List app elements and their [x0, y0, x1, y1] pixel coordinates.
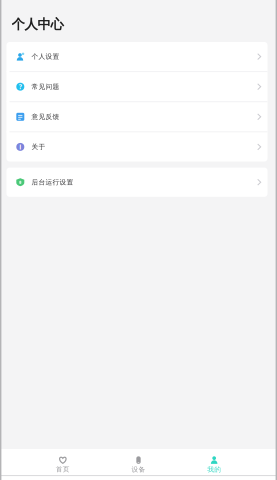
button[interactable]: 我的 [176, 449, 252, 475]
staticText: i [19, 142, 21, 151]
button[interactable]: i [6, 132, 267, 161]
button[interactable]: ? [6, 72, 267, 101]
button[interactable]: 后台运行设置 [6, 168, 267, 197]
staticText: 常见问题 [32, 83, 60, 91]
staticText: 个人中心 [11, 16, 63, 32]
staticText: 后台运行设置 [32, 178, 74, 186]
staticText: 个人设置 [32, 52, 60, 61]
staticText: 我的 [207, 465, 221, 474]
button[interactable]: 设备 [101, 449, 176, 475]
staticText: 关于 [32, 143, 46, 151]
button[interactable]: 首页 [25, 449, 101, 475]
button[interactable]: 个人设置 [6, 42, 267, 71]
staticText: 意见反馈 [32, 113, 60, 121]
button[interactable]: 意见反馈 [6, 102, 267, 131]
staticText: 首页 [56, 465, 70, 473]
staticText: ? [19, 82, 22, 91]
staticText: 设备 [131, 465, 145, 474]
